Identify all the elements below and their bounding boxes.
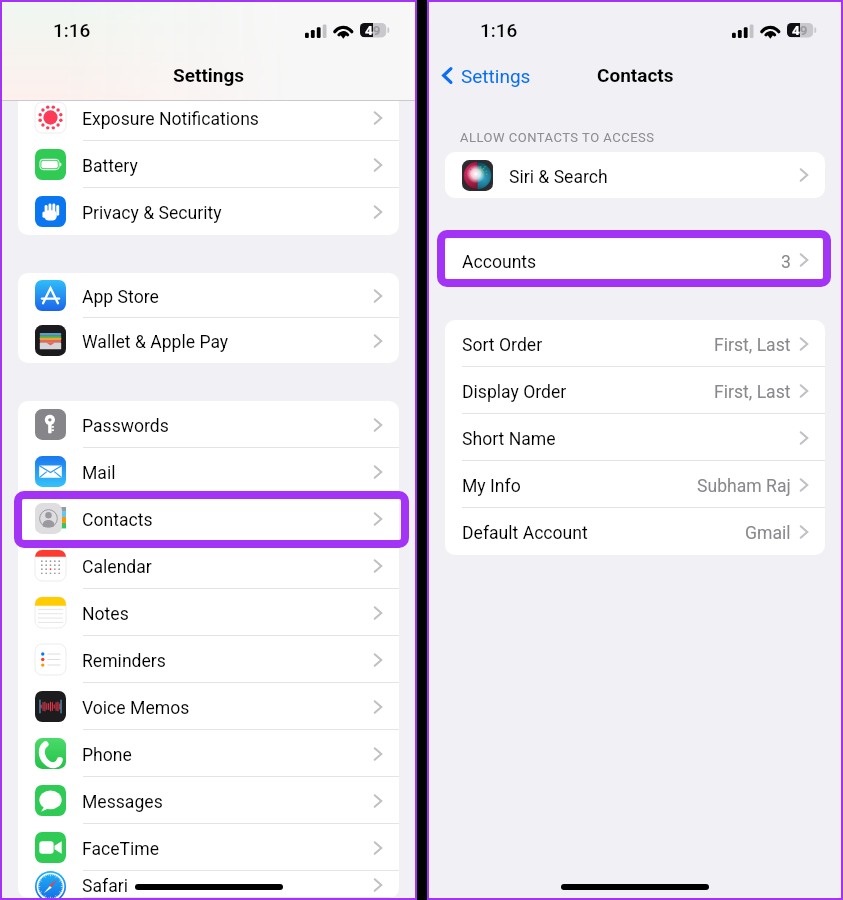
- button[interactable]: Default Account: [445, 508, 825, 555]
- button[interactable]: Settings: [440, 64, 531, 87]
- staticText: Siri & Search: [509, 167, 608, 188]
- staticText: 49: [365, 23, 373, 36]
- staticText: My Info: [462, 476, 521, 497]
- staticText: 49: [792, 23, 800, 36]
- staticText: Notes: [82, 604, 129, 625]
- button[interactable]: FaceTime: [18, 824, 399, 871]
- staticText: Sort Order: [462, 335, 543, 356]
- button[interactable]: Contacts: [18, 495, 399, 542]
- button[interactable]: Accounts: [445, 237, 825, 283]
- staticText: Phone: [82, 745, 132, 766]
- button[interactable]: Mail: [18, 448, 399, 495]
- button[interactable]: Phone: [18, 730, 399, 777]
- staticText: 1:16: [480, 19, 518, 41]
- button[interactable]: Voice Memos: [18, 683, 399, 730]
- staticText: 1:16: [53, 19, 91, 41]
- staticText: App Store: [82, 287, 159, 308]
- staticText: Safari: [82, 876, 128, 897]
- staticText: Settings: [461, 65, 531, 87]
- staticText: Contacts: [82, 510, 153, 531]
- staticText: 49: [792, 22, 808, 37]
- staticText: FaceTime: [82, 839, 160, 860]
- button[interactable]: Battery: [18, 141, 399, 188]
- staticText: 49: [365, 22, 381, 37]
- button[interactable]: Short Name: [445, 414, 825, 461]
- staticText: Short Name: [462, 429, 556, 450]
- button[interactable]: App Store: [18, 273, 399, 318]
- staticText: Battery: [82, 156, 138, 177]
- button[interactable]: Privacy & Security: [18, 188, 399, 235]
- staticText: Voice Memos: [82, 698, 190, 719]
- staticText: Exposure Notifications: [82, 109, 259, 130]
- button[interactable]: Wallet & Apple Pay: [18, 318, 399, 363]
- button[interactable]: Notes: [18, 589, 399, 636]
- staticText: Subham Raj: [697, 476, 791, 497]
- staticText: Passwords: [82, 416, 169, 437]
- staticText: Calendar: [82, 557, 152, 578]
- staticText: Gmail: [745, 523, 791, 544]
- staticText: Privacy & Security: [82, 203, 222, 224]
- button[interactable]: Passwords: [18, 401, 399, 448]
- staticText: Settings: [173, 64, 245, 86]
- staticText: 3: [781, 252, 791, 273]
- staticText: Display Order: [462, 382, 567, 403]
- staticText: ALLOW CONTACTS TO ACCESS: [460, 130, 655, 145]
- staticText: First, Last: [714, 382, 791, 403]
- staticText: First, Last: [714, 335, 791, 356]
- button[interactable]: Exposure Notifications: [18, 101, 399, 141]
- staticText: Messages: [82, 792, 163, 813]
- staticText: Mail: [82, 463, 116, 484]
- button[interactable]: Safari: [18, 871, 399, 898]
- staticText: Contacts: [597, 64, 674, 86]
- button[interactable]: Reminders: [18, 636, 399, 683]
- staticText: Reminders: [82, 651, 166, 672]
- button[interactable]: Calendar: [18, 542, 399, 589]
- staticText: Wallet & Apple Pay: [82, 332, 229, 353]
- button[interactable]: My Info: [445, 461, 825, 508]
- button[interactable]: Siri & Search: [445, 152, 825, 198]
- button[interactable]: Messages: [18, 777, 399, 824]
- staticText: Accounts: [462, 252, 537, 273]
- button[interactable]: Display Order: [445, 367, 825, 414]
- staticText: Default Account: [462, 523, 588, 544]
- button[interactable]: Sort Order: [445, 320, 825, 367]
